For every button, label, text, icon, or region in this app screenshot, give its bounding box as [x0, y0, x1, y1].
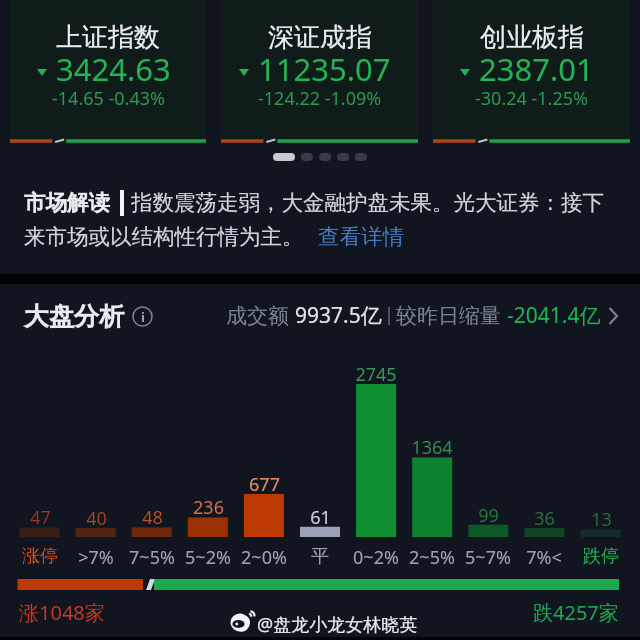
staticText: 成交额 [226, 301, 295, 330]
button[interactable]: 平 [292, 545, 348, 568]
button[interactable]: 跌停 [573, 545, 629, 568]
staticText: 来市场或以结构性行情为主。 [24, 223, 304, 250]
button[interactable]: 成交额 [226, 301, 619, 330]
staticText: 指数震荡走弱，大金融护盘未果。光大证券：接下 [131, 189, 604, 216]
staticText: 涨停 [22, 545, 58, 568]
staticText: 36 [534, 506, 555, 531]
staticText: 2745 [355, 362, 397, 387]
button[interactable]: 深证成指 [221, 0, 418, 144]
staticText: 3424.63 [56, 48, 171, 90]
button[interactable]: 2~0% [236, 545, 292, 570]
staticText: >7% [78, 545, 114, 570]
staticText: -124.22 -1.09% [258, 86, 382, 111]
staticText: 平 [311, 545, 329, 568]
button[interactable]: 涨停 [12, 545, 68, 568]
staticText: -2041.4亿 [507, 301, 601, 330]
staticText: 48 [142, 505, 163, 530]
button[interactable]: Page 5 [355, 153, 367, 161]
staticText: 深证成指 [268, 21, 372, 54]
staticText: 上证指数 [56, 21, 160, 54]
button[interactable]: Page 3 [319, 153, 331, 161]
staticText: @盘龙小龙女林晓英 [257, 612, 418, 637]
staticText: 市场解读 [24, 189, 110, 216]
staticText: 涨1048家 [19, 599, 105, 626]
staticText: -14.65 -0.43% [52, 86, 165, 111]
staticText: 99 [478, 503, 499, 528]
staticText: 11235.07 [258, 48, 391, 90]
button[interactable]: 5~2% [180, 545, 236, 570]
staticText: 40 [86, 506, 107, 531]
staticText: 47 [30, 505, 51, 530]
staticText: 0~2% [353, 545, 399, 570]
button[interactable]: 0~2% [348, 545, 404, 570]
button[interactable]: 2~5% [404, 545, 460, 570]
staticText: 7%< [526, 545, 562, 570]
staticText: 跌停 [583, 545, 619, 568]
staticText: 2387.01 [479, 48, 594, 90]
staticText: 9937.5亿 [295, 301, 382, 330]
button[interactable]: 查看详情 [318, 223, 404, 250]
staticText: 大盘分析 [24, 301, 124, 332]
staticText: 创业板指 [480, 21, 584, 54]
staticText: 5~7% [465, 545, 511, 570]
button[interactable]: >7% [68, 545, 124, 570]
staticText: 236 [193, 495, 224, 520]
button[interactable]: Page 2 [301, 153, 313, 161]
button[interactable]: 7~5% [124, 545, 180, 570]
button[interactable]: Page 1 [273, 153, 295, 161]
button[interactable]: Page 4 [337, 153, 349, 161]
button[interactable]: 7%< [516, 545, 572, 570]
staticText: 2~0% [241, 545, 287, 570]
button[interactable]: 创业板指 [433, 0, 630, 144]
staticText: 1364 [411, 435, 453, 460]
staticText: 61 [310, 505, 331, 530]
staticText: i [141, 308, 145, 326]
staticText: 跌4257家 [533, 599, 619, 626]
staticText: -30.24 -1.25% [475, 86, 588, 111]
button[interactable]: 5~7% [460, 545, 516, 570]
staticText: 677 [249, 472, 280, 497]
staticText: 2~5% [409, 545, 455, 570]
button[interactable]: Info [132, 306, 153, 327]
staticText: 7~5% [129, 545, 175, 570]
staticText: 5~2% [185, 545, 231, 570]
staticText: 较昨日缩量 [396, 301, 507, 330]
staticText: 13 [591, 507, 612, 532]
button[interactable]: 上证指数 [10, 0, 206, 144]
